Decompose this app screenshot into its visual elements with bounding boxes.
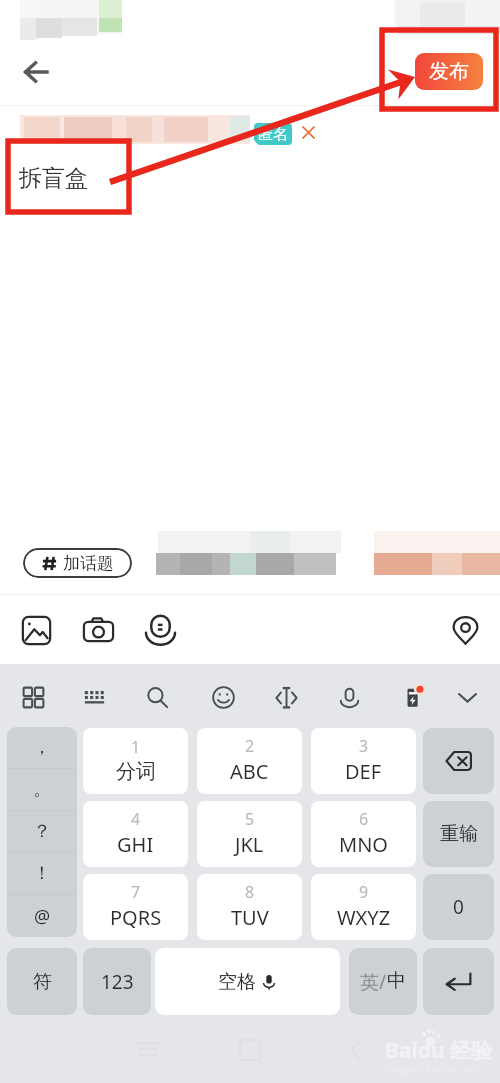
button[interactable]: 匿名: [254, 123, 292, 145]
staticText: ，: [33, 736, 51, 759]
staticText: 匿名: [258, 125, 288, 144]
button[interactable]: Enter: [423, 948, 494, 1015]
staticText: 加话题: [63, 553, 114, 574]
staticText: 6: [359, 808, 369, 830]
button[interactable]: Camera: [77, 609, 119, 651]
staticText: 2: [245, 735, 255, 757]
button[interactable]: Add image: [15, 609, 57, 651]
button[interactable]: 7: [83, 874, 188, 940]
button[interactable]: 123: [83, 948, 151, 1015]
button[interactable]: Emoji: [204, 678, 242, 716]
button[interactable]: @: [7, 895, 77, 937]
button[interactable]: Voice input: [330, 678, 368, 716]
staticText: 空格: [218, 970, 256, 994]
staticText: 5: [245, 808, 255, 830]
staticText: 4: [131, 808, 141, 830]
button[interactable]: ！: [7, 853, 77, 894]
staticText: GHI: [117, 831, 154, 858]
staticText: 英/: [360, 969, 387, 995]
staticText: 重输: [440, 822, 478, 846]
staticText: DEF: [345, 758, 382, 785]
button[interactable]: ？: [7, 811, 77, 852]
staticText: 7: [131, 881, 141, 903]
button[interactable]: 发布: [415, 53, 483, 90]
button[interactable]: 符: [7, 948, 77, 1015]
button[interactable]: Backspace: [423, 728, 494, 794]
button[interactable]: 1: [83, 728, 188, 794]
button[interactable]: 9: [311, 874, 416, 940]
button[interactable]: Search: [138, 678, 176, 716]
staticText: 。: [33, 778, 51, 801]
button[interactable]: Clipboard: [394, 678, 432, 716]
button[interactable]: Voice changer: [139, 608, 181, 650]
button[interactable]: 5: [197, 801, 302, 867]
staticText: 发布: [429, 59, 469, 84]
button[interactable]: Apps: [14, 678, 52, 716]
staticText: Baidu 经验: [385, 1036, 493, 1065]
staticText: PQRS: [110, 904, 162, 931]
staticText: 拆盲盒: [19, 164, 88, 193]
button[interactable]: Remove tag: [296, 120, 320, 144]
button[interactable]: Keyboard layout: [75, 678, 113, 716]
staticText: 符: [33, 970, 52, 994]
staticText: 0: [453, 894, 464, 920]
staticText: 分词: [116, 759, 156, 784]
button[interactable]: 英/: [349, 948, 417, 1015]
staticText: ？: [33, 820, 51, 843]
staticText: WXYZ: [337, 904, 391, 931]
button[interactable]: 空格: [155, 948, 340, 1015]
button[interactable]: 加话题: [23, 548, 132, 578]
staticText: @: [34, 904, 51, 929]
staticText: ！: [33, 862, 51, 885]
button[interactable]: Back: [16, 52, 56, 92]
button[interactable]: Text cursor: [267, 678, 305, 716]
button[interactable]: 2: [197, 728, 302, 794]
button[interactable]: 0: [423, 874, 494, 940]
button[interactable]: Hide keyboard: [448, 678, 486, 716]
button[interactable]: Location: [444, 609, 486, 651]
staticText: 9: [359, 881, 369, 903]
staticText: JKL: [235, 831, 264, 858]
button[interactable]: ，: [7, 727, 77, 768]
staticText: ABC: [230, 758, 269, 785]
button[interactable]: 。: [7, 769, 77, 810]
button[interactable]: 3: [311, 728, 416, 794]
staticText: 123: [101, 969, 134, 995]
staticText: 1: [131, 736, 141, 758]
button[interactable]: 6: [311, 801, 416, 867]
button[interactable]: 8: [197, 874, 302, 940]
button[interactable]: 4: [83, 801, 188, 867]
staticText: 8: [245, 881, 255, 903]
staticText: 3: [359, 735, 369, 757]
staticText: 中: [387, 969, 406, 993]
staticText: MNO: [339, 831, 388, 858]
button[interactable]: 重输: [423, 801, 494, 867]
staticText: TUV: [231, 904, 269, 931]
